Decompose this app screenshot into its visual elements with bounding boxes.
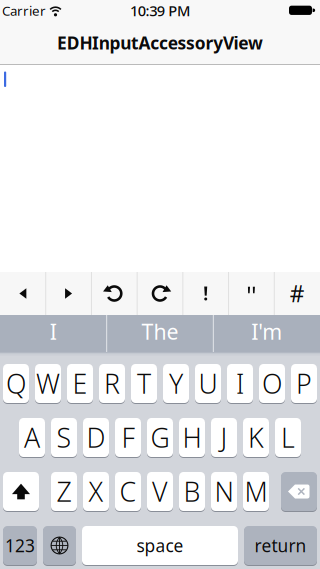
button[interactable]: E (67, 364, 93, 403)
button[interactable]: The (107, 313, 213, 350)
staticText: B (183, 474, 200, 509)
staticText: Carrier (2, 2, 46, 19)
staticText: R (104, 366, 120, 401)
button[interactable]: Delete (281, 472, 317, 511)
button[interactable]: Space (82, 526, 238, 565)
staticText: V (152, 474, 168, 509)
button[interactable]: F (115, 418, 141, 457)
staticText: H (182, 420, 201, 455)
staticText: U (198, 366, 217, 401)
staticText: Q (6, 366, 26, 401)
button[interactable]: V (147, 472, 173, 511)
button[interactable]: Undo (91, 272, 137, 315)
button[interactable]: Previous (0, 272, 46, 315)
button[interactable]: A (19, 418, 45, 457)
staticText: K (248, 420, 264, 455)
button[interactable]: O (259, 364, 285, 403)
staticText: L (281, 420, 295, 455)
staticText: E (72, 366, 87, 401)
button[interactable]: I (227, 364, 253, 403)
button[interactable]: Exclamation mark (183, 272, 229, 315)
button[interactable]: Quote (229, 272, 274, 315)
button[interactable]: S (51, 418, 77, 457)
button[interactable]: I (0, 313, 107, 350)
button[interactable]: R (99, 364, 125, 403)
button[interactable]: L (275, 418, 301, 457)
button[interactable]: C (115, 472, 141, 511)
staticText: P (296, 366, 312, 401)
staticText: I'm (251, 317, 282, 346)
button[interactable]: Redo (137, 272, 183, 315)
button[interactable]: D (83, 418, 109, 457)
staticText: W (36, 366, 60, 401)
button[interactable]: B (179, 472, 205, 511)
staticText: EDHInputAccessoryView (57, 31, 263, 54)
button[interactable]: M (243, 472, 269, 511)
staticText: N (214, 474, 233, 509)
staticText: T (137, 366, 151, 401)
button[interactable]: W (35, 364, 61, 403)
button[interactable]: G (147, 418, 173, 457)
button[interactable]: I'm (213, 313, 320, 350)
staticText: 123 (5, 534, 35, 557)
button[interactable]: Z (51, 472, 77, 511)
staticText: Z (56, 474, 71, 509)
staticText: D (86, 420, 105, 455)
staticText: X (88, 474, 103, 509)
staticText: # (290, 278, 305, 308)
button[interactable]: H (179, 418, 205, 457)
staticText: J (220, 420, 227, 455)
staticText: I (50, 317, 57, 346)
staticText: I (236, 366, 244, 401)
button[interactable]: N (211, 472, 237, 511)
staticText: C (119, 474, 136, 509)
staticText: space (136, 534, 183, 557)
staticText: O (262, 366, 282, 401)
button[interactable]: Return (244, 526, 317, 565)
staticText: return (254, 534, 306, 557)
button[interactable]: T (131, 364, 157, 403)
button[interactable]: Shift (3, 472, 39, 511)
staticText: G (150, 420, 169, 455)
staticText: Y (169, 366, 183, 401)
staticText: The (141, 317, 178, 346)
staticText: F (121, 420, 134, 455)
button[interactable]: Y (163, 364, 189, 403)
button[interactable]: Q (3, 364, 29, 403)
button[interactable]: Numbers (3, 526, 37, 565)
button[interactable]: Next keyboard (43, 526, 76, 565)
button[interactable]: Next (46, 272, 91, 315)
button[interactable]: K (243, 418, 269, 457)
button[interactable]: P (291, 364, 317, 403)
button[interactable]: J (211, 418, 237, 457)
staticText: S (56, 420, 71, 455)
button[interactable]: Hash (274, 272, 320, 315)
staticText: M (244, 474, 267, 509)
staticText: 10:39 PM (130, 1, 190, 20)
button[interactable]: X (83, 472, 109, 511)
button[interactable]: U (195, 364, 221, 403)
staticText: A (24, 420, 40, 455)
